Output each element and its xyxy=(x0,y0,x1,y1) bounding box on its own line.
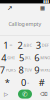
button[interactable]: 6 xyxy=(34,51,50,64)
staticText: PQRS xyxy=(6,67,16,73)
button[interactable]: * xyxy=(0,76,16,89)
button[interactable]: # xyxy=(34,76,50,89)
staticText: 3 xyxy=(36,39,41,51)
staticText: ∞ xyxy=(9,43,12,47)
button[interactable]: 1 xyxy=(0,39,16,51)
button[interactable]: Call xyxy=(18,90,32,99)
staticText: + xyxy=(27,80,29,85)
staticText: 2 xyxy=(17,39,22,51)
staticText: 1 xyxy=(3,39,8,51)
staticText: Call log empty xyxy=(8,20,41,27)
staticText: ↗ xyxy=(7,4,13,12)
button[interactable]: 5 xyxy=(16,51,34,64)
staticText: 5 xyxy=(19,51,24,64)
button[interactable]: 7 xyxy=(0,64,16,76)
staticText: ✆ xyxy=(22,90,28,98)
button[interactable]: 9 xyxy=(34,64,50,76)
staticText: JKL xyxy=(25,55,31,60)
staticText: ABC xyxy=(23,42,32,48)
button[interactable]: 4 xyxy=(0,51,16,64)
staticText: 9 xyxy=(34,64,39,76)
staticText: ⌫ xyxy=(40,91,48,97)
button[interactable]: 3 xyxy=(34,39,50,51)
staticText: ▮▮▮ xyxy=(43,0,49,4)
button[interactable]: Backspace xyxy=(40,90,48,98)
staticText: 6 xyxy=(34,51,39,64)
staticText: * xyxy=(5,76,10,89)
staticText: ▷ xyxy=(4,91,8,97)
staticText: DEF xyxy=(42,42,49,48)
staticText: 7 xyxy=(0,64,5,76)
staticText: GHI xyxy=(7,55,14,60)
staticText: 0 xyxy=(21,76,26,89)
staticText: ▦ xyxy=(40,5,45,11)
staticText: TUV xyxy=(24,67,31,73)
button[interactable]: 8 xyxy=(16,64,34,76)
button[interactable]: 0 xyxy=(16,76,34,89)
staticText: 4 xyxy=(1,51,6,64)
button[interactable]: 2 xyxy=(16,39,34,51)
staticText: MNO xyxy=(40,55,50,60)
button[interactable]: Video call xyxy=(2,90,10,98)
staticText: 8 xyxy=(18,64,23,76)
staticText: # xyxy=(39,76,45,89)
staticText: WXYZ xyxy=(40,67,50,73)
